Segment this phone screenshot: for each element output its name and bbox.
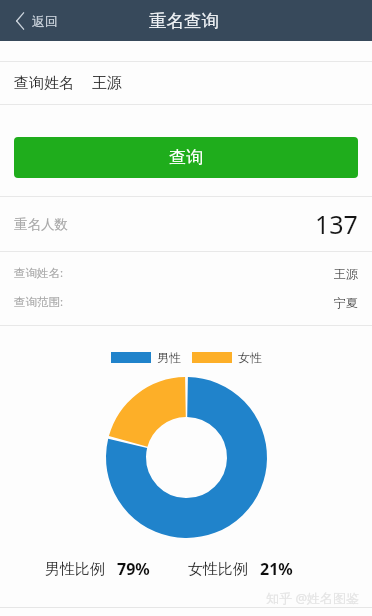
staticText: 查询 <box>169 147 203 168</box>
staticText: 宁夏 <box>334 295 358 310</box>
staticText: 男性 <box>157 350 181 365</box>
staticText: 137 <box>315 207 358 241</box>
staticText: 返回 <box>32 13 58 29</box>
button[interactable]: 返回 <box>10 6 64 36</box>
staticText: 王源 <box>334 266 358 281</box>
staticText: 查询姓名 <box>14 74 74 93</box>
button[interactable]: 查询姓名 <box>0 62 372 104</box>
staticText: 女性 <box>238 350 262 365</box>
staticText: 知乎 @姓名图鉴 <box>266 589 360 607</box>
staticText: 79% <box>117 558 150 580</box>
staticText: 查询范围: <box>14 294 64 310</box>
staticText: 女性比例 <box>188 560 248 579</box>
staticText: 重名人数 <box>14 216 68 233</box>
staticText: 男性比例 <box>45 560 105 579</box>
staticText: 查询姓名: <box>14 265 64 281</box>
staticText: 王源 <box>92 74 122 93</box>
staticText: 21% <box>260 558 293 580</box>
button[interactable]: 查询 <box>14 137 358 178</box>
staticText: 重名查询 <box>149 10 219 32</box>
